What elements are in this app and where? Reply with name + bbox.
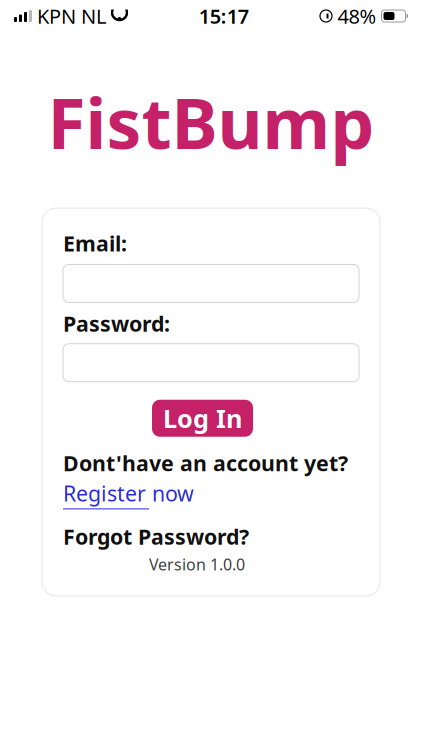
button[interactable]: Register now: [63, 479, 194, 509]
staticText: KPN NL: [37, 3, 106, 29]
staticText: FistBump: [47, 76, 374, 168]
button[interactable]: Log In: [152, 400, 253, 437]
staticText: Email:: [63, 229, 127, 257]
staticText: Forgot Password?: [63, 522, 249, 551]
staticText: Register now: [63, 479, 194, 507]
staticText: Dont'have an account yet?: [63, 449, 348, 477]
staticText: Version 1.0.0: [149, 554, 245, 575]
staticText: Password:: [63, 309, 170, 338]
staticText: Log In: [163, 401, 242, 435]
staticText: 15:17: [199, 3, 249, 29]
staticText: 48%: [337, 3, 376, 29]
